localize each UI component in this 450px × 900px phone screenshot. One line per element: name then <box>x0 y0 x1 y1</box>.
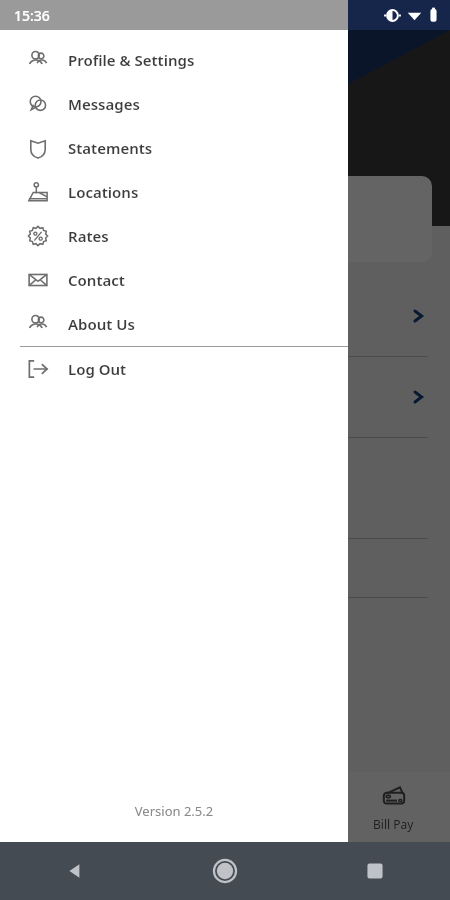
button[interactable]: Statements <box>0 126 348 170</box>
staticText: Profile & Settings <box>68 50 195 70</box>
button[interactable]: Recent apps <box>353 849 397 893</box>
button[interactable]: Locations <box>0 170 348 214</box>
button[interactable]: Profile & Settings <box>0 38 348 82</box>
button[interactable]: Messages <box>0 82 348 126</box>
staticText: Version 2.5.2 <box>0 802 348 820</box>
staticText: 15:36 <box>14 6 50 25</box>
button[interactable]: Rates <box>0 214 348 258</box>
staticText: Locations <box>68 182 139 202</box>
button[interactable]: Home <box>203 849 247 893</box>
staticText: About Us <box>68 314 135 334</box>
button[interactable]: Savings Account <box>0 357 450 437</box>
staticText: Savings Account <box>22 375 139 395</box>
button[interactable]: Log Out <box>0 347 348 391</box>
staticText: Log Out <box>68 359 127 379</box>
button[interactable]: Transfer <box>112 776 224 838</box>
staticText: $2,481.30 <box>22 320 86 339</box>
button[interactable]: Account Balance Combined <box>132 176 432 262</box>
staticText: Rates <box>68 226 109 246</box>
button[interactable]: Checking Account <box>0 276 450 356</box>
staticText: Statements <box>68 138 153 158</box>
staticText: Contact <box>68 270 125 290</box>
button[interactable]: Bill Pay <box>337 776 450 838</box>
button[interactable]: Back <box>53 849 97 893</box>
staticText: Bill Pay <box>373 816 414 832</box>
button[interactable]: Contact <box>0 258 348 302</box>
button[interactable]: About Us <box>0 302 348 346</box>
staticText: Messages <box>68 94 140 114</box>
